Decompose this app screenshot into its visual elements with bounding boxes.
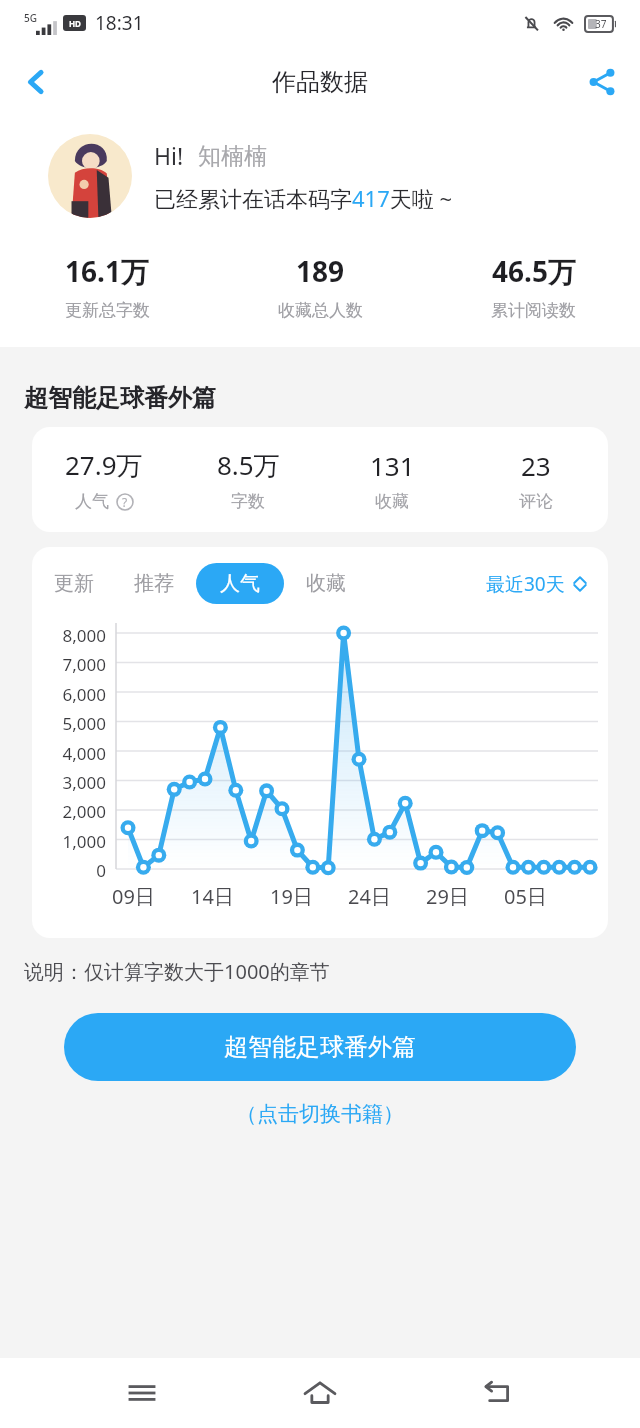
button[interactable]: Back <box>462 1358 534 1428</box>
staticText: 189 <box>296 252 345 290</box>
staticText: 131 <box>370 448 415 483</box>
staticText: 19日 <box>270 883 313 910</box>
staticText: 累计阅读数 <box>491 300 576 321</box>
staticText: 5G <box>24 11 37 25</box>
staticText: 收藏总人数 <box>278 300 363 321</box>
staticText: 24日 <box>348 883 391 910</box>
staticText: 37 <box>595 17 607 31</box>
button[interactable]: 推荐 <box>126 563 182 604</box>
staticText: 超智能足球番外篇 <box>24 383 216 413</box>
button[interactable]: Home <box>284 1358 356 1428</box>
staticText: 作品数据 <box>272 67 368 97</box>
staticText: 说明：仅计算字数大于1000的章节 <box>24 958 330 985</box>
staticText: 8.5万 <box>217 447 280 483</box>
staticText: 29日 <box>426 883 469 910</box>
staticText: 6,000 <box>62 683 106 706</box>
staticText: 1,000 <box>62 830 106 853</box>
button[interactable]: 人气 <box>196 563 284 604</box>
staticText: 4,000 <box>62 742 106 765</box>
staticText: 最近30天 <box>486 571 565 597</box>
staticText: 8,000 <box>62 624 106 647</box>
staticText: 收藏 <box>306 571 346 596</box>
staticText: Hi! <box>154 140 184 171</box>
staticText: 0 <box>96 859 106 882</box>
staticText: 推荐 <box>134 571 174 596</box>
staticText: 7,000 <box>62 653 106 676</box>
staticText: HD <box>69 18 81 29</box>
button[interactable]: 超智能足球番外篇 <box>64 1013 576 1081</box>
button[interactable]: 最近30天 <box>482 567 592 601</box>
staticText: 超智能足球番外篇 <box>224 1032 416 1062</box>
staticText: 23 <box>521 448 551 483</box>
button[interactable]: （点击切换书籍） <box>228 1093 412 1135</box>
staticText: （点击切换书籍） <box>236 1101 404 1127</box>
staticText: 09日 <box>112 883 155 910</box>
button[interactable]: 收藏 <box>298 563 354 604</box>
staticText: 知楠楠 <box>198 142 267 171</box>
staticText: 更新 <box>54 571 94 596</box>
staticText: 14日 <box>191 883 234 910</box>
staticText: 27.9万 <box>65 447 143 483</box>
button[interactable]: 27.9万 <box>32 427 608 532</box>
button[interactable]: Share <box>572 52 632 112</box>
staticText: 5,000 <box>62 712 106 735</box>
staticText: 评论 <box>519 491 553 512</box>
staticText: 3,000 <box>62 771 106 794</box>
staticText: 字数 <box>231 491 265 512</box>
staticText: ? <box>122 494 128 510</box>
staticText: 05日 <box>504 883 547 910</box>
staticText: 16.1万 <box>65 252 149 290</box>
staticText: 人气 <box>220 571 260 596</box>
staticText: 2,000 <box>62 800 106 823</box>
staticText: 46.5万 <box>492 252 576 290</box>
button[interactable]: Back <box>6 52 66 112</box>
staticText: 收藏 <box>375 491 409 512</box>
staticText: 已经累计在话本码字417天啦 ~ <box>154 183 453 213</box>
staticText: 更新总字数 <box>65 300 150 321</box>
staticText: 18:31 <box>95 10 144 36</box>
button[interactable]: 更新 <box>46 563 102 604</box>
button[interactable]: Recent apps <box>106 1358 178 1428</box>
staticText: 人气 <box>75 491 109 512</box>
